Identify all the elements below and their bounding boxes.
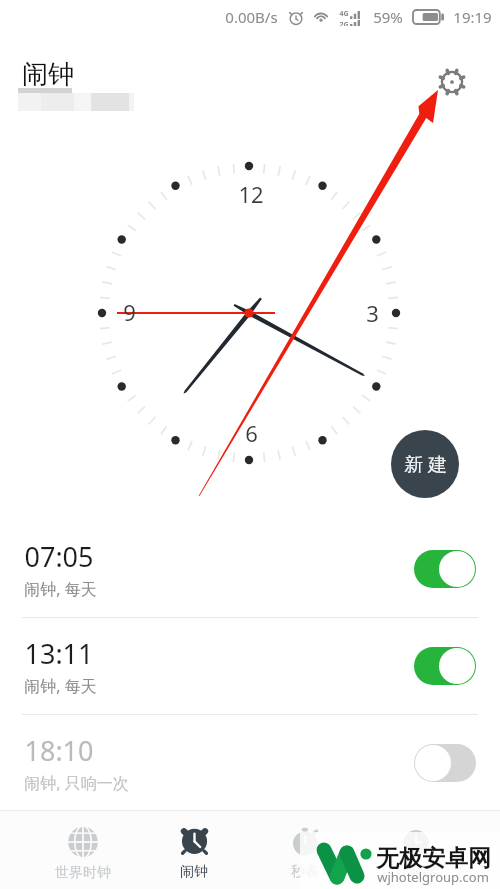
button[interactable]: 13:11 bbox=[0, 618, 500, 714]
staticText: 秒表 bbox=[291, 863, 319, 881]
button[interactable]: 世界时钟 bbox=[28, 810, 138, 889]
staticText: 世界时钟 bbox=[55, 864, 111, 882]
staticText: 13:11 bbox=[24, 635, 94, 672]
button[interactable]: 计时器 bbox=[361, 810, 471, 889]
button[interactable]: Settings bbox=[434, 64, 470, 100]
staticText: 12 bbox=[238, 179, 264, 209]
staticText: 闹钟, 每天 bbox=[24, 578, 97, 600]
staticText: 闹钟, 只响一次 bbox=[24, 772, 129, 794]
button[interactable]: Alarm enabled bbox=[414, 647, 476, 685]
staticText: 新 建 bbox=[404, 451, 447, 477]
staticText: 07:05 bbox=[24, 538, 94, 575]
staticText: 闹钟 bbox=[22, 58, 74, 91]
staticText: 18:10 bbox=[24, 732, 94, 769]
staticText: 计时器 bbox=[395, 863, 437, 881]
staticText: 4G bbox=[339, 9, 349, 19]
staticText: 2G bbox=[339, 20, 349, 26]
button[interactable]: Alarm enabled bbox=[414, 550, 476, 588]
button[interactable]: 18:10 bbox=[0, 715, 500, 811]
staticText: 0.00B/s bbox=[225, 7, 278, 27]
staticText: 9 bbox=[123, 297, 136, 327]
staticText: 闹钟 bbox=[180, 863, 208, 881]
button[interactable]: 新 建 bbox=[391, 430, 459, 498]
staticText: wjhotelgroup.com bbox=[377, 868, 489, 886]
staticText: 59% bbox=[373, 7, 403, 27]
staticText: 19:19 bbox=[453, 7, 492, 27]
staticText: 无极安卓网 bbox=[376, 844, 491, 873]
staticText: 3 bbox=[366, 298, 379, 328]
staticText: 闹钟, 每天 bbox=[24, 675, 97, 697]
button[interactable]: 07:05 bbox=[0, 521, 500, 617]
staticText: 6 bbox=[245, 418, 258, 448]
button[interactable]: Alarm disabled bbox=[414, 744, 476, 782]
button[interactable]: 闹钟 bbox=[139, 810, 249, 889]
button[interactable]: 秒表 bbox=[250, 810, 360, 889]
